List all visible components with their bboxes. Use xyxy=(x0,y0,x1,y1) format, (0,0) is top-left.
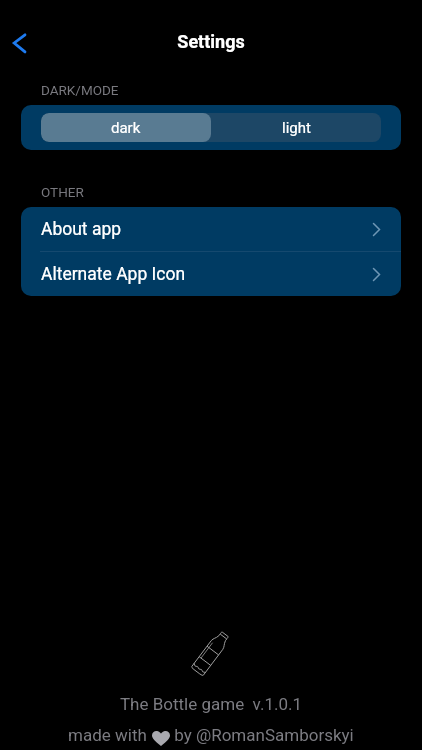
staticText: About app xyxy=(41,219,122,240)
staticText: DARK/MODE xyxy=(41,82,119,98)
staticText: OTHER xyxy=(41,184,84,200)
button[interactable]: Back xyxy=(0,21,44,65)
staticText: light xyxy=(282,119,311,137)
staticText: by @RomanSamborskyi xyxy=(170,725,354,745)
staticText: The Bottle game v.1.0.1 xyxy=(0,694,422,714)
staticText: dark xyxy=(111,119,141,137)
staticText: Alternate App Icon xyxy=(41,264,186,285)
button[interactable]: light xyxy=(211,113,381,142)
button[interactable]: Alternate App Icon xyxy=(21,252,401,296)
button[interactable]: About app xyxy=(21,207,401,251)
staticText: Settings xyxy=(0,31,422,52)
button[interactable]: dark xyxy=(41,113,211,142)
staticText: made with xyxy=(68,725,152,745)
